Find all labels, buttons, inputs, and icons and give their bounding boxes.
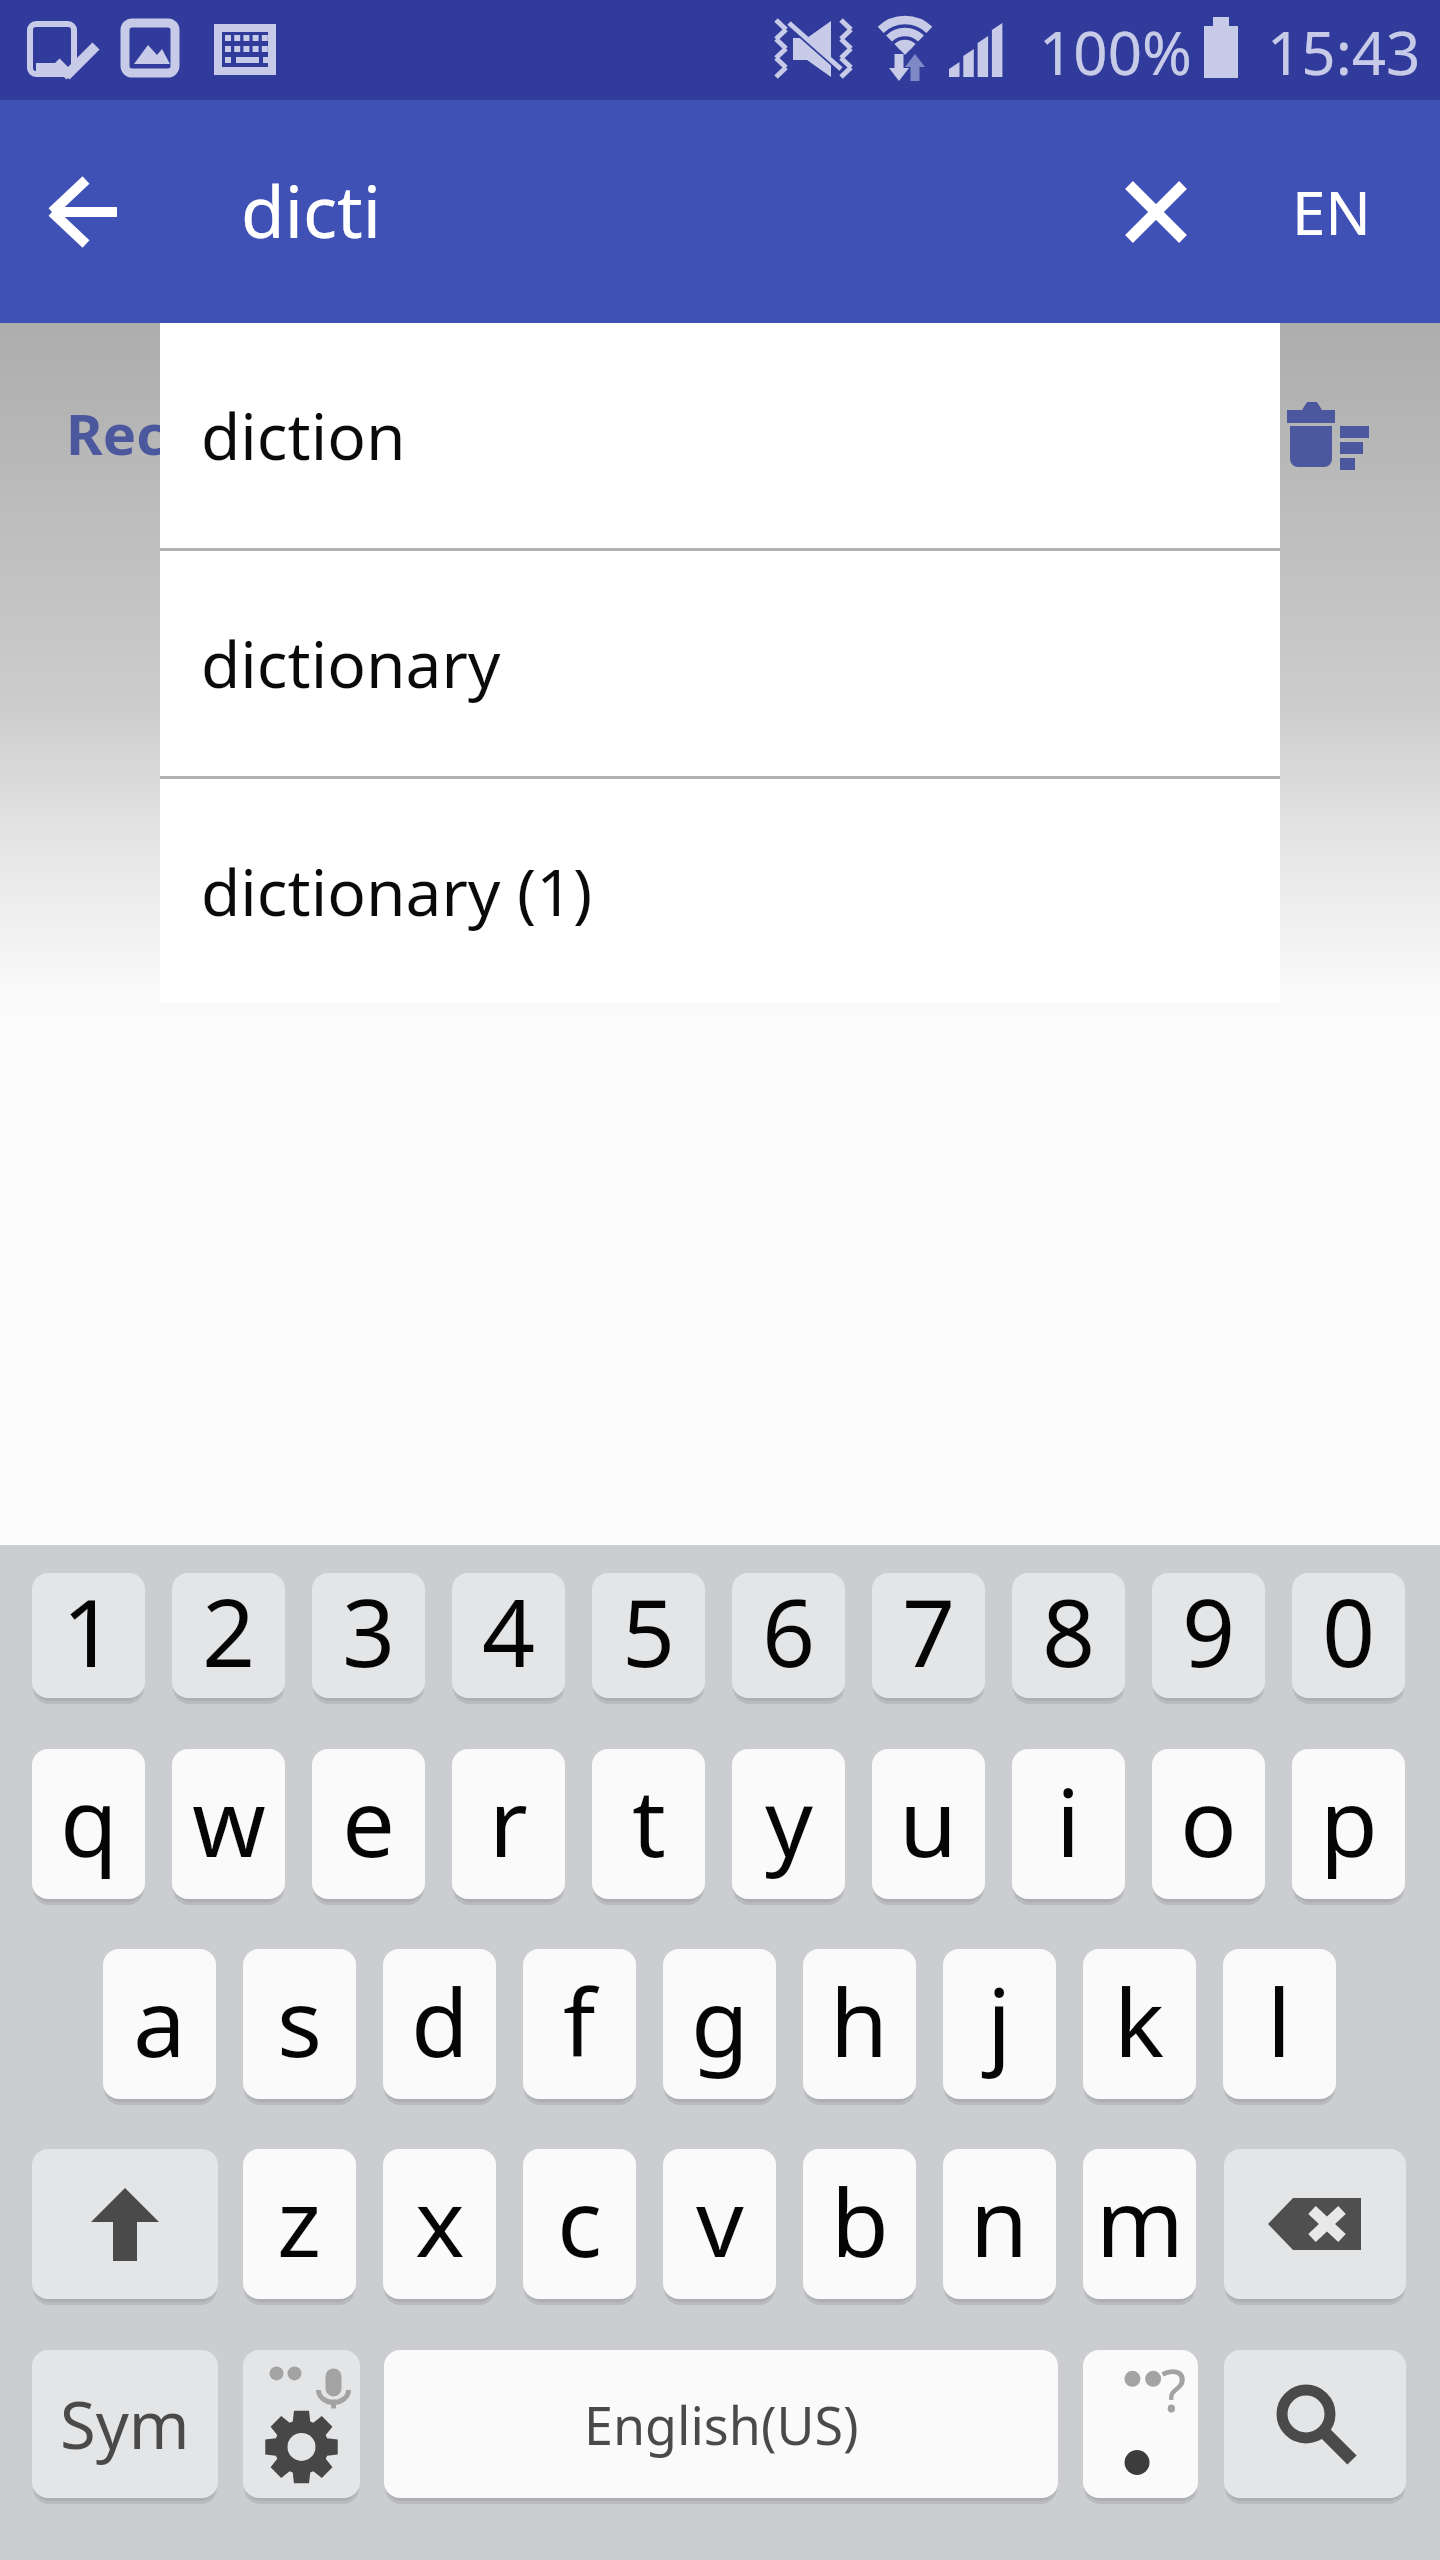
staticText: EN (1292, 171, 1371, 253)
button[interactable]: 1 (32, 1573, 145, 1698)
staticText: diction (201, 392, 406, 479)
button[interactable]: i (1012, 1749, 1125, 1899)
button[interactable]: p (1292, 1749, 1405, 1899)
staticText: s (277, 1957, 323, 2085)
staticText: m (1096, 2157, 1184, 2285)
button[interactable]: o (1152, 1749, 1265, 1899)
staticText: 9 (1182, 1573, 1236, 1693)
staticText: y (765, 1757, 813, 1885)
button[interactable]: 0 (1292, 1573, 1405, 1698)
staticText: g (691, 1957, 749, 2085)
button[interactable]: v (663, 2149, 776, 2299)
button[interactable]: 4 (452, 1573, 565, 1698)
button[interactable]: dictionary (160, 551, 1280, 776)
button[interactable]: Shift (32, 2149, 218, 2299)
staticText: o (1180, 1757, 1237, 1885)
staticText: 100% (1039, 11, 1192, 93)
staticText: t (632, 1757, 666, 1885)
staticText: k (1114, 1957, 1165, 2085)
button[interactable]: g (663, 1949, 776, 2099)
staticText: x (415, 2157, 465, 2285)
staticText: b (831, 2157, 889, 2285)
staticText: w (192, 1757, 266, 1885)
button[interactable]: 2 (172, 1573, 285, 1698)
staticText: 8 (1042, 1573, 1096, 1693)
staticText: f (563, 1957, 596, 2085)
button[interactable]: Sym (32, 2350, 218, 2498)
staticText: q (60, 1757, 118, 1885)
button[interactable]: Settings (243, 2350, 360, 2498)
button[interactable]: l (1223, 1949, 1336, 2099)
button[interactable]: z (243, 2149, 356, 2299)
staticText: 6 (762, 1573, 816, 1693)
staticText: 7 (902, 1573, 956, 1693)
staticText: English(US) (584, 2389, 859, 2460)
staticText: Sym (60, 2380, 190, 2469)
staticText: dictionary (201, 620, 501, 707)
staticText: n (970, 2157, 1029, 2285)
button[interactable]: English(US) (384, 2350, 1058, 2498)
button[interactable]: 7 (872, 1573, 985, 1698)
button[interactable]: k (1083, 1949, 1196, 2099)
button[interactable]: 9 (1152, 1573, 1265, 1698)
staticText: d (411, 1957, 469, 2085)
button[interactable]: dictionary (1) (160, 779, 1280, 1003)
button[interactable]: n (943, 2149, 1056, 2299)
button[interactable]: b (803, 2149, 916, 2299)
button[interactable]: t (592, 1749, 705, 1899)
staticText: i (1056, 1757, 1081, 1885)
button[interactable]: Clear recent (1286, 401, 1372, 471)
button[interactable]: 3 (312, 1573, 425, 1698)
staticText: h (830, 1957, 889, 2085)
staticText: e (342, 1757, 396, 1885)
staticText: u (899, 1757, 958, 1885)
button[interactable]: r (452, 1749, 565, 1899)
staticText: p (1320, 1757, 1378, 1885)
staticText: dicti (241, 162, 382, 259)
button[interactable]: y (732, 1749, 845, 1899)
button[interactable]: diction (160, 323, 1280, 548)
staticText: 0 (1322, 1573, 1376, 1693)
button[interactable]: q (32, 1749, 145, 1899)
staticText: r (489, 1757, 528, 1885)
staticText: 15:43 (1267, 11, 1421, 93)
button[interactable]: 6 (732, 1573, 845, 1698)
button[interactable]: Backspace (1224, 2149, 1406, 2299)
button[interactable]: j (943, 1949, 1056, 2099)
staticText: ? (1161, 2350, 1187, 2429)
button[interactable]: Period (1083, 2350, 1198, 2498)
staticText: 2 (202, 1573, 256, 1693)
staticText: 4 (482, 1573, 536, 1693)
staticText: l (1267, 1957, 1292, 2085)
button[interactable]: h (803, 1949, 916, 2099)
button[interactable]: x (383, 2149, 496, 2299)
button[interactable]: e (312, 1749, 425, 1899)
staticText: dictionary (1) (201, 848, 593, 935)
button[interactable]: Clear text (1100, 156, 1212, 268)
staticText: c (557, 2157, 603, 2285)
button[interactable]: Back (28, 156, 140, 268)
button[interactable]: EN (1275, 156, 1387, 268)
staticText: 5 (622, 1573, 676, 1693)
staticText: Recent (66, 395, 260, 471)
button[interactable]: d (383, 1949, 496, 2099)
button[interactable]: Search (1224, 2350, 1406, 2498)
staticText: a (133, 1957, 186, 2085)
staticText: z (277, 2157, 322, 2285)
staticText: 1 (62, 1573, 116, 1693)
button[interactable]: c (523, 2149, 636, 2299)
button[interactable]: s (243, 1949, 356, 2099)
staticText: v (696, 2157, 744, 2285)
button[interactable]: w (172, 1749, 285, 1899)
button[interactable]: a (103, 1949, 216, 2099)
button[interactable]: f (523, 1949, 636, 2099)
staticText: 3 (342, 1573, 396, 1693)
button[interactable]: 8 (1012, 1573, 1125, 1698)
staticText: j (987, 1957, 1012, 2085)
button[interactable]: u (872, 1749, 985, 1899)
button[interactable]: 5 (592, 1573, 705, 1698)
button[interactable]: m (1083, 2149, 1196, 2299)
